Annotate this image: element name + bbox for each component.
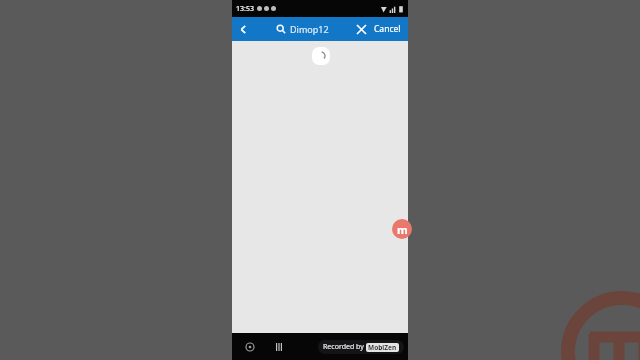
button[interactable]: Cancel [372, 17, 408, 41]
staticText: Recorded by [323, 342, 366, 352]
staticText: 13:53 [236, 4, 254, 14]
button[interactable]: Dimop12 [254, 17, 350, 41]
staticText: Dimop12 [290, 23, 329, 35]
staticText: MobiZen [368, 343, 397, 352]
button[interactable]: Clear [350, 17, 372, 41]
button[interactable]: Recents [269, 337, 289, 357]
staticText: m [397, 222, 408, 237]
staticText: Cancel [374, 23, 401, 35]
button[interactable]: MobiZen recorder [392, 219, 412, 239]
button[interactable]: Back [240, 337, 260, 357]
button[interactable]: Back [232, 17, 254, 41]
